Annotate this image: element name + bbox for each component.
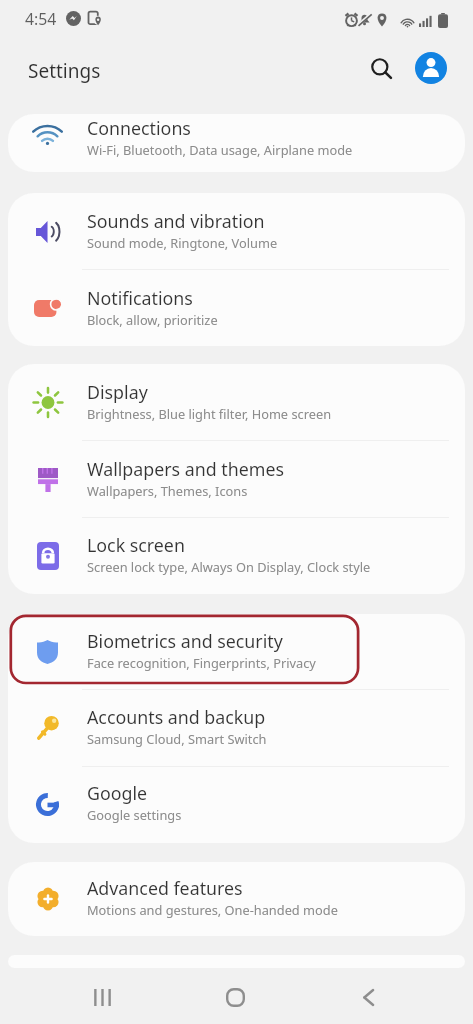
staticText: Display [87, 380, 148, 404]
button[interactable]: Search [360, 47, 402, 89]
staticText: Lock screen [87, 533, 185, 557]
staticText: Samsung Cloud, Smart Switch [87, 730, 267, 747]
button[interactable]: Back [345, 974, 391, 1020]
staticText: Face recognition, Fingerprints, Privacy [87, 654, 316, 671]
staticText: Google settings [87, 806, 182, 823]
staticText: Block, allow, prioritize [87, 311, 218, 328]
button[interactable]: Sounds and vibration [8, 193, 465, 270]
staticText: Sound mode, Ringtone, Volume [87, 234, 278, 251]
button[interactable]: Recent apps [79, 974, 125, 1020]
staticText: Advanced features [87, 876, 243, 900]
staticText: Biometrics and security [87, 629, 283, 653]
button[interactable]: Google [8, 766, 465, 842]
staticText: Wallpapers, Themes, Icons [87, 482, 248, 499]
staticText: Notifications [87, 286, 193, 310]
button[interactable]: Accounts and backup [8, 690, 465, 766]
staticText: Settings [28, 58, 101, 84]
button[interactable]: Home [212, 974, 258, 1020]
button[interactable]: Wallpapers and themes [8, 441, 465, 518]
staticText: Connections [87, 116, 191, 140]
staticText: Accounts and backup [87, 705, 266, 729]
button[interactable]: Biometrics and security [8, 614, 465, 690]
staticText: Motions and gestures, One-handed mode [87, 901, 338, 918]
staticText: Sounds and vibration [87, 209, 265, 233]
button[interactable]: Account [415, 52, 447, 84]
staticText: Brightness, Blue light filter, Home scre… [87, 405, 332, 422]
button[interactable]: Connections [8, 114, 465, 172]
button[interactable]: Notifications [8, 270, 465, 346]
staticText: Google [87, 781, 148, 805]
staticText: 4:54 [25, 8, 57, 30]
staticText: Screen lock type, Always On Display, Clo… [87, 558, 371, 575]
button[interactable]: Advanced features [8, 862, 465, 936]
staticText: Wallpapers and themes [87, 457, 284, 481]
button[interactable]: Lock screen [8, 517, 465, 594]
button[interactable]: Display [8, 364, 465, 441]
staticText: Wi-Fi, Bluetooth, Data usage, Airplane m… [87, 141, 353, 158]
